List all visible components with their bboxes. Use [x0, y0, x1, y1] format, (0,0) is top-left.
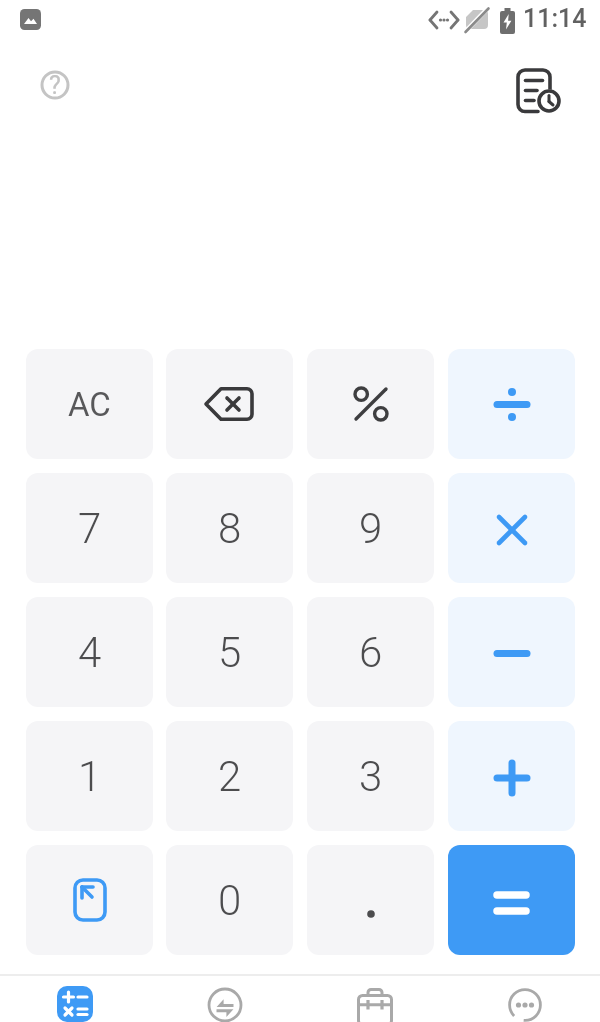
button[interactable] [448, 845, 575, 955]
staticText: 7 [78, 504, 102, 553]
button[interactable] [448, 473, 575, 583]
button[interactable]: 3 [307, 721, 434, 831]
staticText: 0 [218, 876, 242, 925]
button[interactable]: 9 [307, 473, 434, 583]
button[interactable] [166, 349, 293, 459]
button[interactable]: 5 [166, 597, 293, 707]
button[interactable]: 4 [26, 597, 153, 707]
button[interactable] [307, 845, 434, 955]
staticText: AC [68, 385, 111, 424]
button[interactable]: 6 [307, 597, 434, 707]
staticText: 8 [218, 504, 242, 553]
staticText: 2 [218, 752, 242, 801]
button[interactable] [448, 721, 575, 831]
button[interactable] [307, 349, 434, 459]
button[interactable] [448, 349, 575, 459]
button[interactable] [325, 980, 425, 1022]
staticText: ? [49, 71, 61, 100]
staticText: 3 [359, 752, 383, 801]
button[interactable]: ? [33, 63, 77, 107]
button[interactable]: 0 [166, 845, 293, 955]
button[interactable] [475, 980, 575, 1022]
button[interactable]: AC [26, 349, 153, 459]
button[interactable] [26, 845, 153, 955]
button[interactable] [512, 64, 564, 116]
button[interactable]: 1 [26, 721, 153, 831]
button[interactable] [25, 980, 125, 1022]
button[interactable] [175, 980, 275, 1022]
button[interactable]: 8 [166, 473, 293, 583]
staticText: 1 [78, 752, 102, 801]
button[interactable]: 7 [26, 473, 153, 583]
button[interactable] [448, 597, 575, 707]
staticText: 4 [78, 628, 102, 677]
staticText: 6 [359, 628, 383, 677]
button[interactable]: 2 [166, 721, 293, 831]
staticText: 9 [359, 504, 383, 553]
staticText: 5 [218, 628, 242, 677]
staticText: 11:14 [523, 4, 587, 33]
